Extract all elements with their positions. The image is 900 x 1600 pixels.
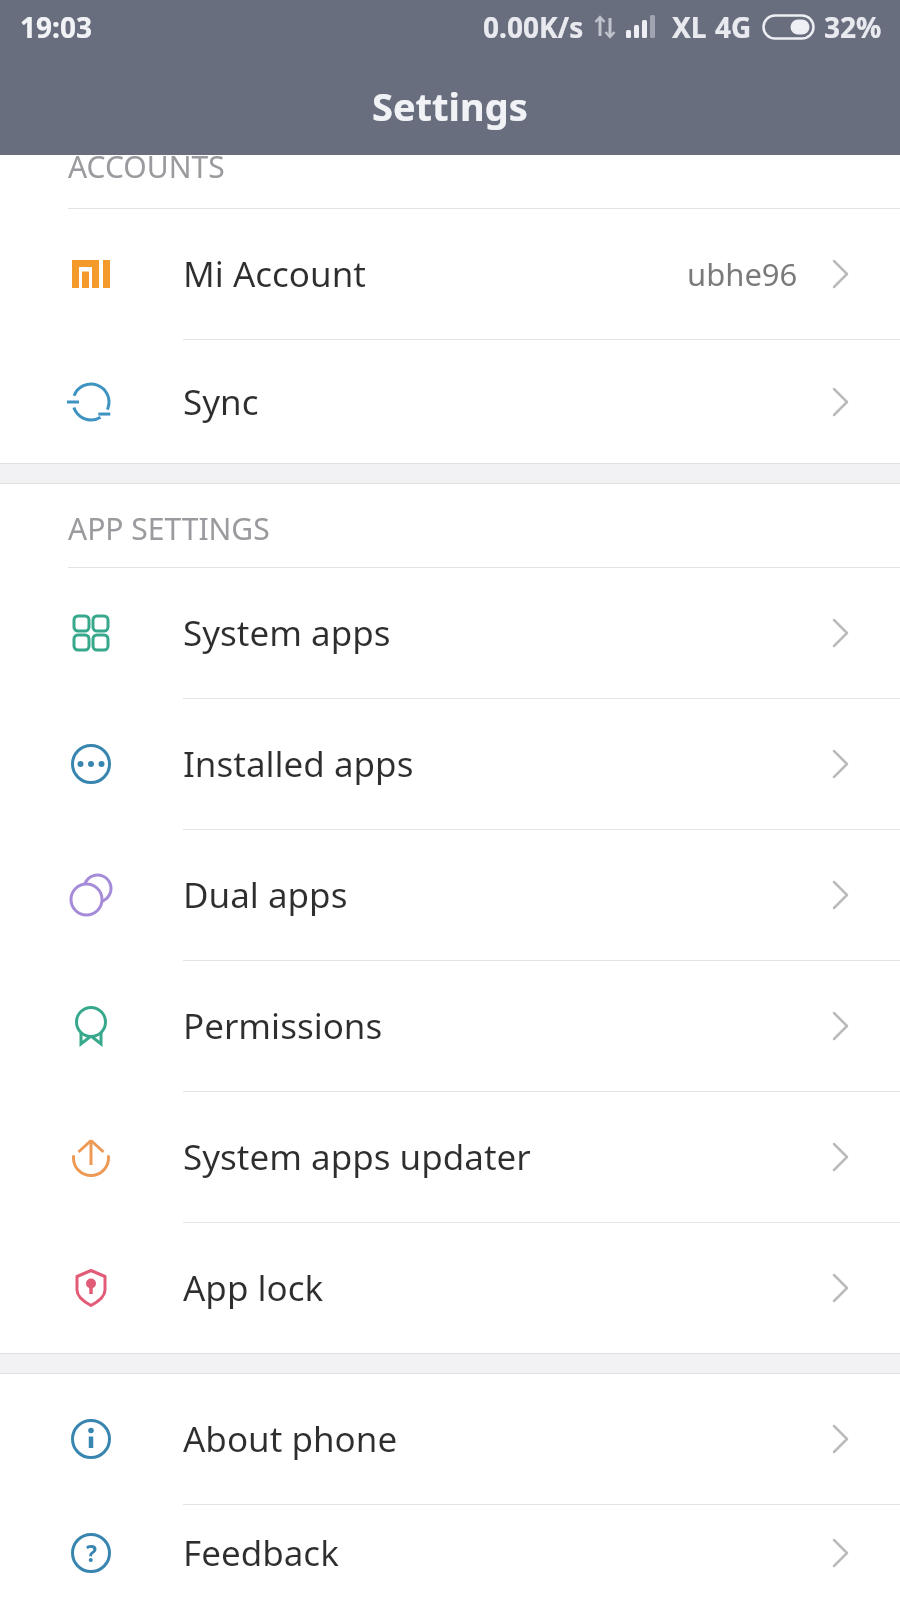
staticText: System apps updater xyxy=(183,1133,531,1181)
staticText: Settings xyxy=(372,80,528,132)
staticText: System apps xyxy=(183,609,391,657)
button[interactable]: System apps xyxy=(0,568,900,698)
staticText: ? xyxy=(86,1537,97,1568)
button[interactable]: Dual apps xyxy=(0,830,900,960)
button[interactable]: App lock xyxy=(0,1223,900,1353)
staticText: 4G xyxy=(715,8,752,46)
staticText: 19:03 xyxy=(20,8,92,46)
button[interactable]: Mi Account xyxy=(0,209,900,339)
button[interactable]: System apps updater xyxy=(0,1092,900,1222)
staticText: About phone xyxy=(183,1415,398,1463)
staticText: App lock xyxy=(183,1264,324,1312)
button[interactable]: About phone xyxy=(0,1374,900,1504)
staticText: ubhe96 xyxy=(687,253,798,295)
button[interactable]: ? xyxy=(0,1505,900,1600)
staticText: Feedback xyxy=(183,1529,339,1577)
button[interactable]: Installed apps xyxy=(0,699,900,829)
staticText: 0.00K/s xyxy=(483,8,584,46)
staticText: Dual apps xyxy=(183,871,348,919)
staticText: Mi Account xyxy=(183,250,366,298)
staticText: Installed apps xyxy=(183,740,414,788)
staticText: Permissions xyxy=(183,1002,383,1050)
staticText: Sync xyxy=(183,378,259,426)
button[interactable]: Permissions xyxy=(0,961,900,1091)
staticText: APP SETTINGS xyxy=(68,508,270,549)
staticText: XL xyxy=(672,8,707,46)
staticText: 32% xyxy=(824,8,882,46)
staticText: ACCOUNTS xyxy=(68,146,225,187)
button[interactable]: Sync xyxy=(0,340,900,463)
